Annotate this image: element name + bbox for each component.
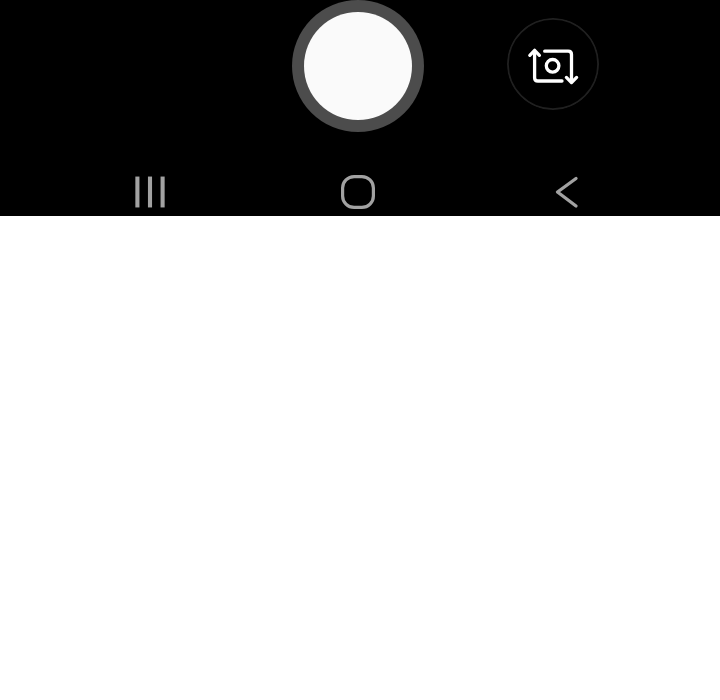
button[interactable]: Switch camera [507, 18, 599, 110]
button[interactable]: Back [533, 163, 597, 221]
button[interactable]: Recent apps [118, 163, 182, 221]
button[interactable]: Home [326, 163, 390, 221]
button[interactable]: Take photo [292, 0, 424, 132]
